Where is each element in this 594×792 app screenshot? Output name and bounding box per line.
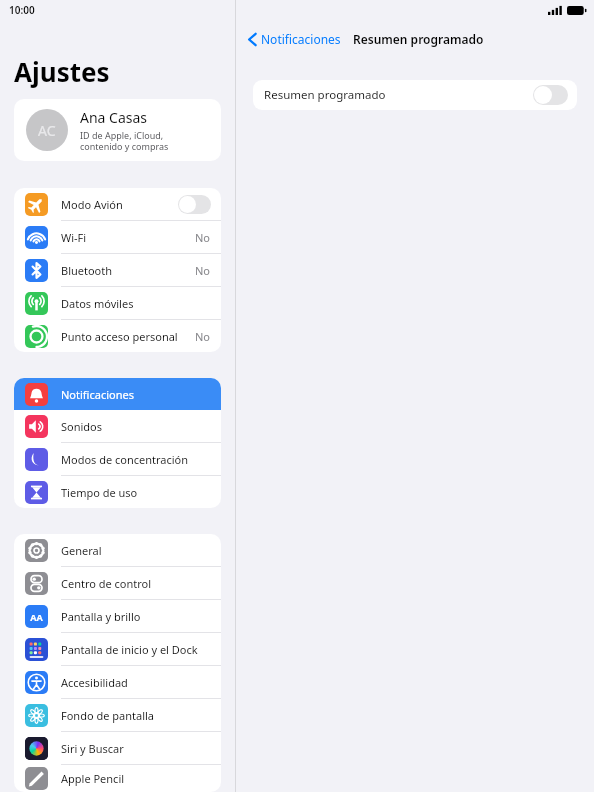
staticText: AC xyxy=(38,121,56,140)
button[interactable]: Bluetooth xyxy=(14,254,221,286)
button[interactable]: Resumen programado xyxy=(253,80,577,110)
staticText: Resumen programado xyxy=(353,31,484,47)
button[interactable]: General xyxy=(14,534,221,566)
button[interactable]: Datos móviles xyxy=(14,287,221,319)
button[interactable]: Fondo de pantalla xyxy=(14,699,221,731)
staticText: Pantalla de inicio y el Dock xyxy=(61,642,211,657)
staticText: No xyxy=(195,230,211,245)
staticText: Centro de control xyxy=(61,576,211,591)
button[interactable]: AA xyxy=(14,600,221,632)
staticText: Modo Avión xyxy=(61,197,178,212)
staticText: Fondo de pantalla xyxy=(61,708,211,723)
staticText: Siri y Buscar xyxy=(61,741,211,756)
staticText: Modos de concentración xyxy=(61,452,211,467)
staticText: Wi-Fi xyxy=(61,230,195,245)
staticText: Bluetooth xyxy=(61,263,195,278)
staticText: Notificaciones xyxy=(61,387,211,402)
staticText: Punto acceso personal xyxy=(61,329,195,344)
staticText: Notificaciones xyxy=(261,31,341,47)
staticText: Datos móviles xyxy=(61,296,211,311)
staticText: Ajustes xyxy=(14,54,110,89)
staticText: Resumen programado xyxy=(264,87,533,103)
staticText: Pantalla y brillo xyxy=(61,609,211,624)
button[interactable]: Accesibilidad xyxy=(14,666,221,698)
staticText: AA xyxy=(30,611,43,623)
button[interactable]: Wi-Fi xyxy=(14,221,221,253)
button[interactable]: Resumen programado xyxy=(533,85,568,105)
button[interactable]: Apple Pencil xyxy=(14,765,221,792)
button[interactable]: Sonidos xyxy=(14,410,221,442)
staticText: No xyxy=(195,263,211,278)
button[interactable]: Notificaciones xyxy=(246,28,343,50)
staticText: Apple Pencil xyxy=(61,771,211,786)
staticText: ID de Apple, iCloud, contenido y compras xyxy=(80,129,169,152)
button[interactable]: Punto acceso personal xyxy=(14,320,221,352)
button[interactable]: Pantalla de inicio y el Dock xyxy=(14,633,221,665)
staticText: Accesibilidad xyxy=(61,675,211,690)
button[interactable]: Centro de control xyxy=(14,567,221,599)
staticText: Tiempo de uso xyxy=(61,485,211,500)
staticText: 10:00 xyxy=(9,3,35,17)
button[interactable]: Modos de concentración xyxy=(14,443,221,475)
staticText: Ana Casas xyxy=(80,108,148,127)
button[interactable]: Siri y Buscar xyxy=(14,732,221,764)
staticText: General xyxy=(61,543,211,558)
staticText: Sonidos xyxy=(61,419,211,434)
button[interactable]: AC xyxy=(14,99,221,161)
staticText: No xyxy=(195,329,211,344)
button[interactable]: Notificaciones xyxy=(14,378,221,410)
button[interactable]: Modo Avión xyxy=(178,195,211,214)
button[interactable]: Tiempo de uso xyxy=(14,476,221,508)
button[interactable]: Modo Avión xyxy=(14,188,221,220)
